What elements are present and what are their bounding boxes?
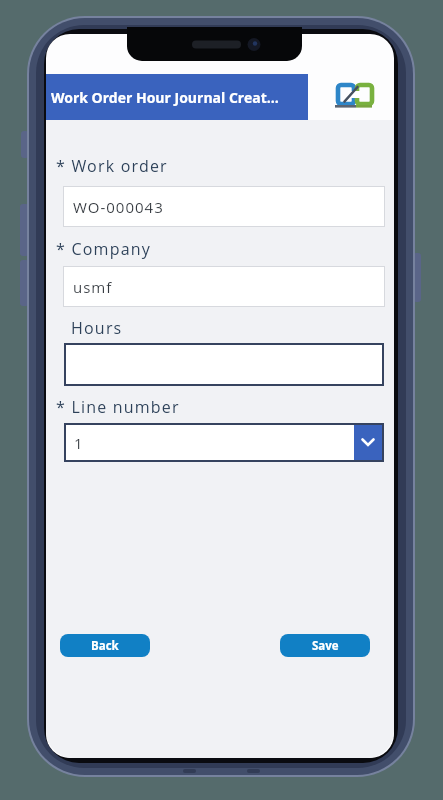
button[interactable]: Save <box>280 634 370 657</box>
staticText: usmf <box>73 277 113 297</box>
staticText: * Company <box>56 238 152 260</box>
button[interactable]: Back <box>60 634 150 657</box>
staticText: Back <box>91 638 119 654</box>
staticText: * Work order <box>56 155 168 177</box>
staticText: Work Order Hour Journal Creat... <box>51 88 279 107</box>
staticText: 1 <box>74 433 84 453</box>
staticText: Save <box>312 638 339 654</box>
staticText: * Line number <box>56 396 180 418</box>
button[interactable]: WO-000043 <box>63 186 385 227</box>
button[interactable] <box>64 343 384 386</box>
button[interactable]: usmf <box>63 266 385 307</box>
button[interactable]: 1 <box>64 423 384 462</box>
staticText: WO-000043 <box>73 197 164 217</box>
staticText: Hours <box>71 317 123 339</box>
